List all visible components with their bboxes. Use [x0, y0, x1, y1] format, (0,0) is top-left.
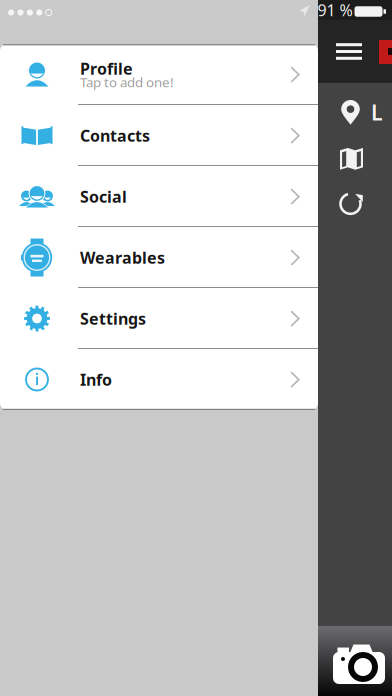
staticText: L [371, 98, 383, 126]
button[interactable]: Profile [0, 44, 318, 105]
staticText: 91 % [317, 0, 352, 21]
button[interactable]: Social [0, 166, 318, 227]
button[interactable]: Info [0, 349, 318, 410]
staticText: Social [80, 186, 127, 207]
staticText: Tap to add one! [80, 73, 174, 91]
button[interactable]: Camera [333, 643, 385, 685]
staticText: Settings [80, 308, 146, 329]
staticText: Profile [80, 58, 133, 79]
button[interactable]: Settings [0, 288, 318, 349]
button[interactable]: Menu [326, 17, 372, 84]
staticText: Wearables [80, 247, 165, 268]
staticText: Contacts [80, 125, 150, 146]
staticText: Info [80, 369, 112, 390]
button[interactable]: Contacts [0, 105, 318, 166]
button[interactable]: Wearables [0, 227, 318, 288]
